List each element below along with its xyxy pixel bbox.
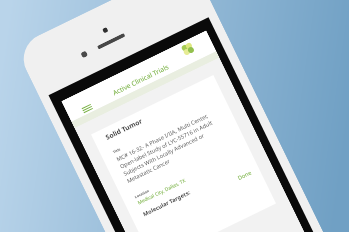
staticText: Title: [112, 146, 121, 154]
button[interactable]: Done: [236, 168, 253, 182]
staticText: Solid Tumor: [104, 116, 144, 142]
staticText: Medical City, Dallas, TX: [136, 177, 187, 206]
staticText: Location: [134, 188, 150, 199]
staticText: Done: [236, 168, 253, 182]
button[interactable]: Menu: [81, 103, 93, 114]
staticText: Active Clinical Trials: [66, 40, 215, 119]
staticText: Molecular Targets:: [142, 188, 192, 218]
staticText: MC# 16-32- A Phase I/IIA, Multi Center, …: [115, 107, 231, 185]
